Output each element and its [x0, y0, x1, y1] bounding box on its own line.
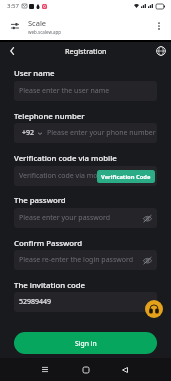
staticText: Telephone number [14, 111, 85, 122]
staticText: Verification code via mobile [14, 153, 117, 164]
staticText: Registration [65, 46, 107, 56]
button[interactable]: Home [72, 358, 100, 381]
staticText: Verification Code [101, 173, 151, 181]
staticText: web.scalew.app [28, 29, 62, 35]
staticText: The password [14, 195, 66, 206]
button[interactable]: More options [152, 19, 166, 33]
staticText: Please enter your phone number [47, 128, 156, 138]
staticText: User name [14, 68, 55, 79]
staticText: 3:57 [7, 2, 19, 10]
button[interactable]: Change language [154, 44, 168, 58]
staticText: Confirm Password [14, 238, 83, 249]
staticText: Verification code via mob [19, 171, 102, 181]
button[interactable]: Show password [142, 213, 153, 224]
button[interactable]: Page settings [8, 19, 22, 33]
button[interactable]: Show password [142, 255, 153, 266]
button[interactable]: Back [4, 43, 19, 58]
staticText: Sign in [75, 339, 97, 348]
staticText: Scale [28, 18, 47, 28]
button[interactable]: Verification Code [97, 170, 155, 183]
staticText: 52989449 [19, 297, 52, 307]
button[interactable]: Sign in [14, 332, 157, 354]
button[interactable]: Back [111, 358, 139, 381]
button[interactable]: Customer support [145, 300, 163, 318]
button[interactable]: Recent apps [31, 358, 59, 381]
staticText: Please re-enter the login password [19, 255, 134, 265]
staticText: +92 [22, 128, 35, 138]
staticText: Please enter your password [19, 213, 111, 223]
staticText: The invitation code [14, 280, 86, 291]
staticText: Please enter the user name [19, 86, 110, 96]
